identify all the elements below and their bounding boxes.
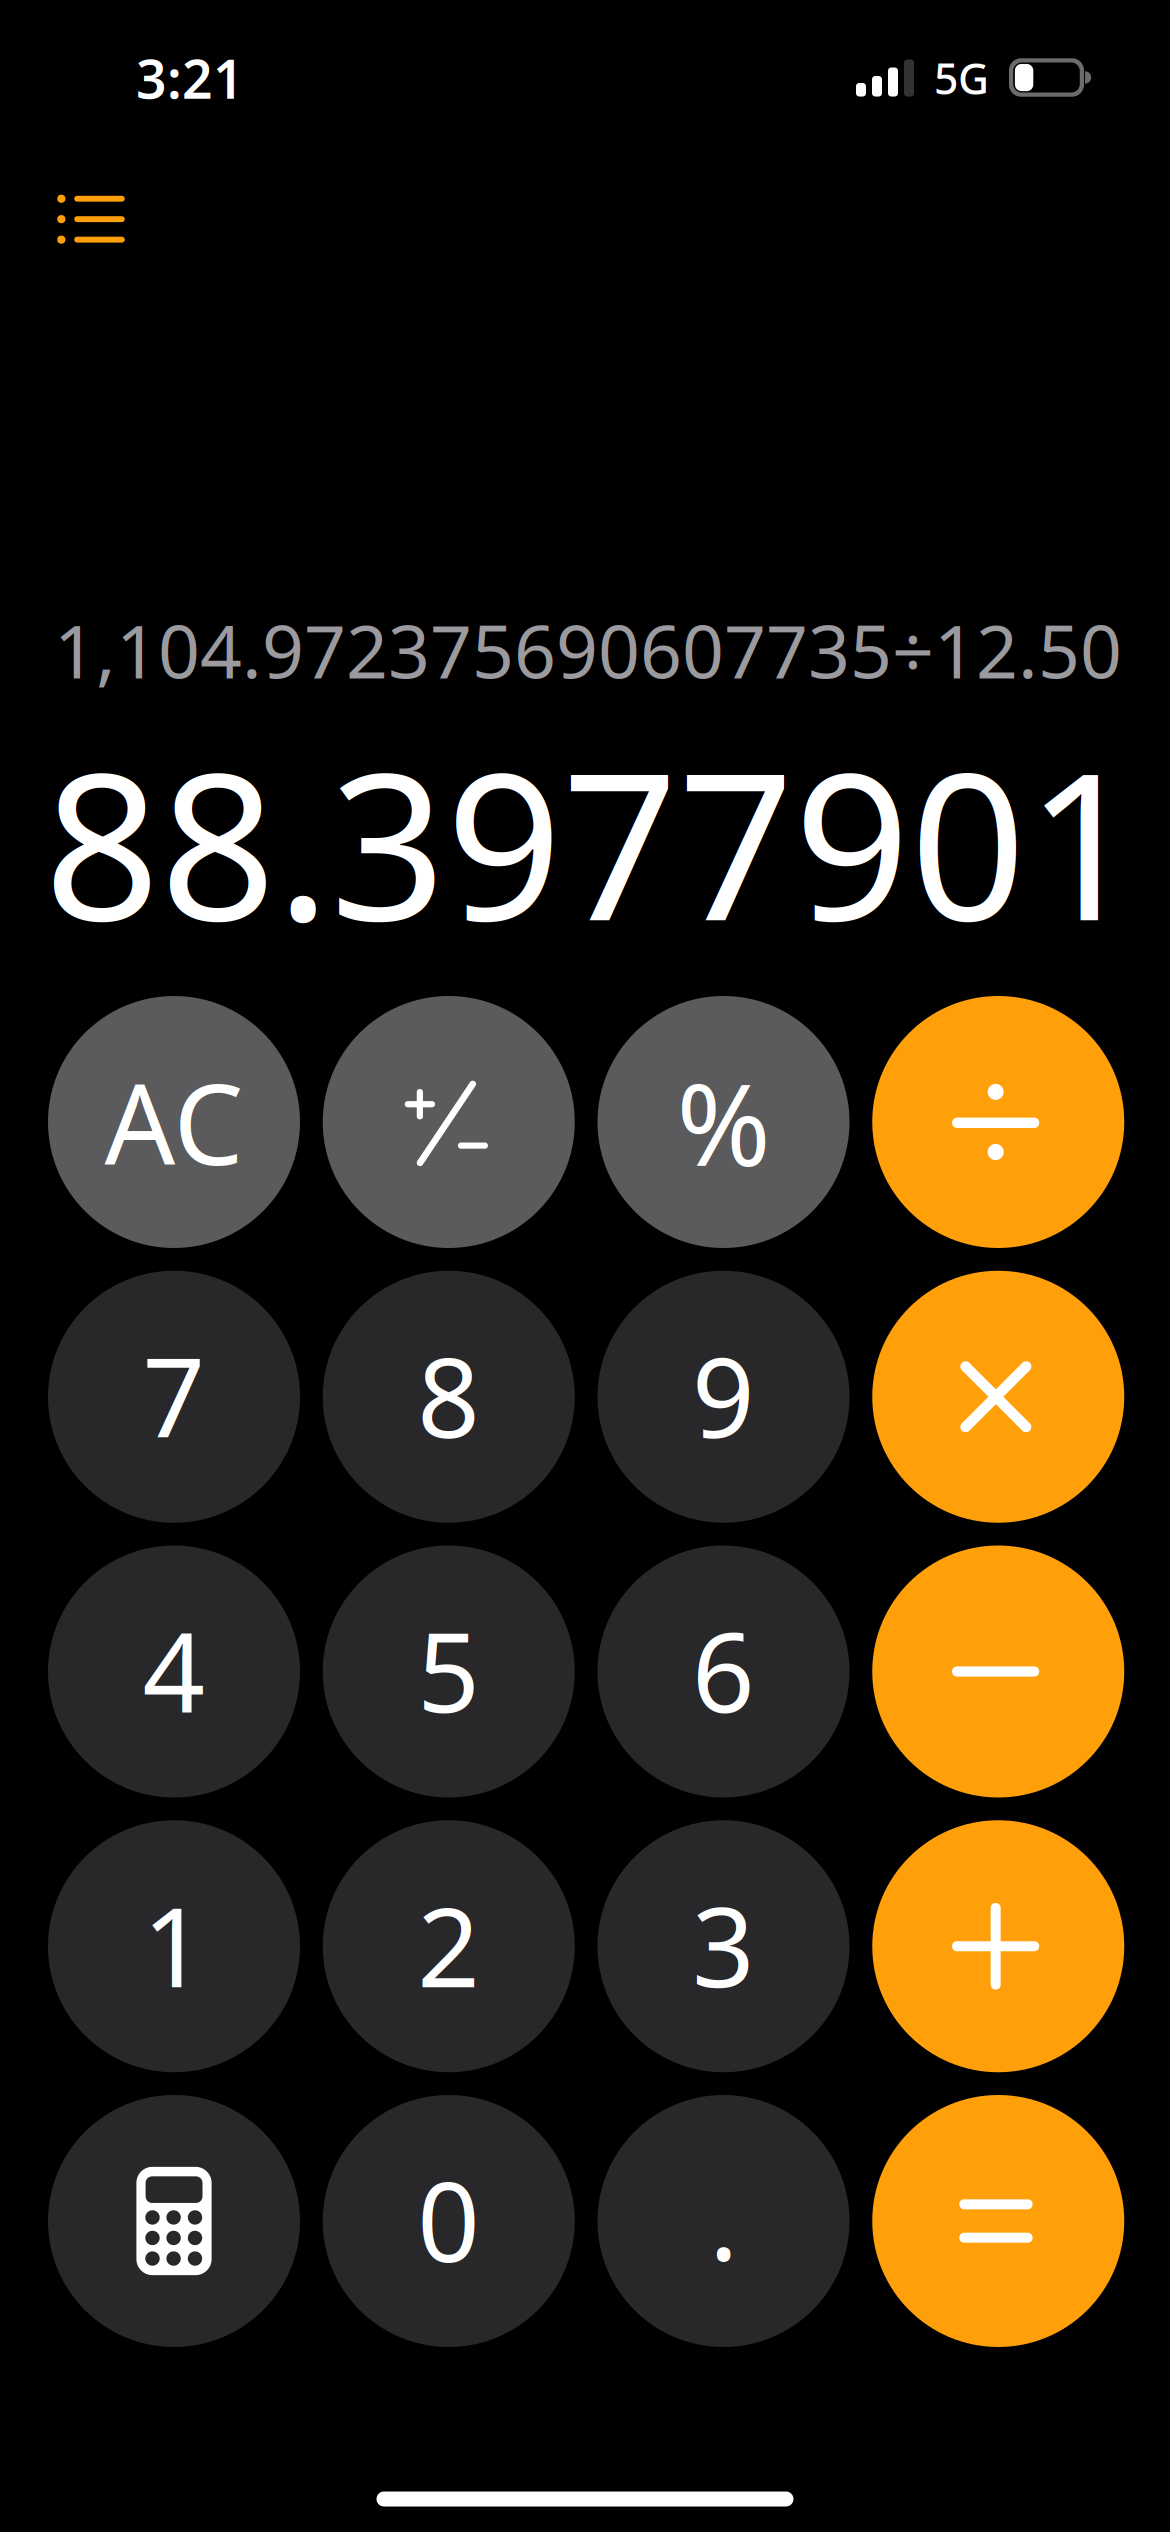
button[interactable]: History xyxy=(21,154,161,284)
staticText: 2 xyxy=(417,1872,480,2017)
button[interactable]: 3 xyxy=(597,1820,849,2072)
button[interactable]: 5 xyxy=(323,1545,575,1797)
button[interactable]: Basic Calculator xyxy=(48,2095,300,2347)
button[interactable]: Plus Minus xyxy=(323,996,575,1248)
staticText: 3:21 xyxy=(136,43,244,113)
staticText: % xyxy=(676,1047,770,1197)
staticText: 9 xyxy=(692,1323,755,1468)
staticText: 3 xyxy=(692,1872,755,2017)
button[interactable]: Subtract xyxy=(872,1545,1124,1797)
button[interactable]: 9 xyxy=(597,1271,849,1523)
button[interactable]: . xyxy=(597,2095,849,2347)
staticText: AC xyxy=(104,1048,243,1195)
button[interactable]: 8 xyxy=(323,1271,575,1523)
staticText: 4 xyxy=(142,1597,205,1743)
button[interactable]: 2 xyxy=(323,1820,575,2072)
staticText: 5 xyxy=(417,1597,480,1743)
button[interactable]: 0 xyxy=(323,2095,575,2347)
staticText: 7 xyxy=(142,1323,205,1468)
staticText: 5G xyxy=(934,50,989,106)
button[interactable]: % xyxy=(597,996,849,1248)
staticText: 1 xyxy=(142,1872,205,2017)
button[interactable]: AC xyxy=(48,996,300,1248)
button[interactable]: 4 xyxy=(48,1545,300,1797)
button[interactable]: 7 xyxy=(48,1271,300,1523)
button[interactable]: Divide xyxy=(872,996,1124,1248)
staticText: 88.3977901 xyxy=(44,707,1142,976)
button[interactable]: 1 xyxy=(48,1820,300,2072)
button[interactable]: 6 xyxy=(597,1545,849,1797)
staticText: . xyxy=(709,2145,738,2290)
button[interactable]: Add xyxy=(872,1820,1124,2072)
button[interactable]: Multiply xyxy=(872,1271,1124,1523)
staticText: 1,104.972375690607735÷12.50 xyxy=(54,601,1122,699)
button[interactable]: Equals xyxy=(872,2095,1124,2347)
staticText: 8 xyxy=(417,1323,480,1468)
staticText: 6 xyxy=(692,1597,755,1743)
staticText: 0 xyxy=(417,2147,480,2292)
